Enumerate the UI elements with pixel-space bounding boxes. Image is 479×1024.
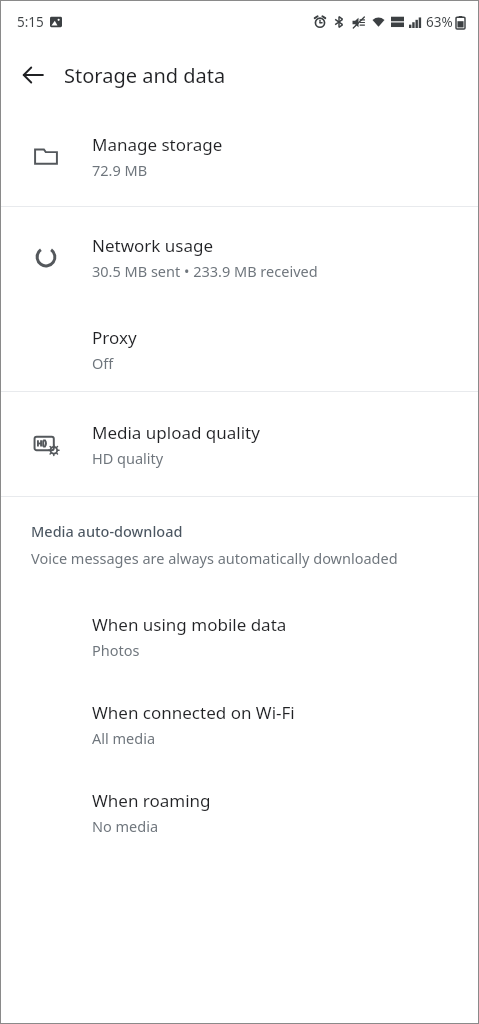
staticText: Media upload quality	[92, 421, 260, 444]
staticText: 63%	[426, 13, 453, 31]
staticText: HD quality	[92, 448, 164, 468]
button[interactable]: When roaming	[0, 768, 479, 856]
staticText: Proxy	[92, 326, 137, 349]
staticText: Media auto-download	[31, 521, 183, 541]
staticText: No media	[92, 816, 159, 836]
staticText: Storage and data	[64, 62, 226, 89]
button[interactable]: Manage storage	[0, 106, 479, 206]
staticText: 30.5 MB sent • 233.9 MB received	[92, 261, 318, 281]
other: Network usage	[33, 244, 59, 270]
button[interactable]: Network usage	[0, 207, 479, 307]
staticText: 72.9 MB	[92, 160, 148, 180]
other: Media upload quality	[33, 431, 59, 457]
button[interactable]: When using mobile data	[0, 592, 479, 680]
staticText: Voice messages are always automatically …	[31, 548, 398, 568]
staticText: When using mobile data	[92, 613, 287, 636]
button[interactable]: Back	[12, 54, 54, 96]
button[interactable]: Media upload quality	[0, 392, 479, 496]
staticText: When connected on Wi-Fi	[92, 701, 295, 724]
button[interactable]: When connected on Wi-Fi	[0, 680, 479, 768]
staticText: When roaming	[92, 789, 211, 812]
button[interactable]: Proxy	[0, 307, 479, 391]
other: Manage storage	[33, 143, 59, 169]
staticText: Off	[92, 353, 114, 373]
staticText: All media	[92, 728, 156, 748]
staticText: Network usage	[92, 234, 214, 257]
staticText: Manage storage	[92, 133, 223, 156]
staticText: Photos	[92, 640, 140, 660]
staticText: 5:15	[17, 13, 44, 31]
